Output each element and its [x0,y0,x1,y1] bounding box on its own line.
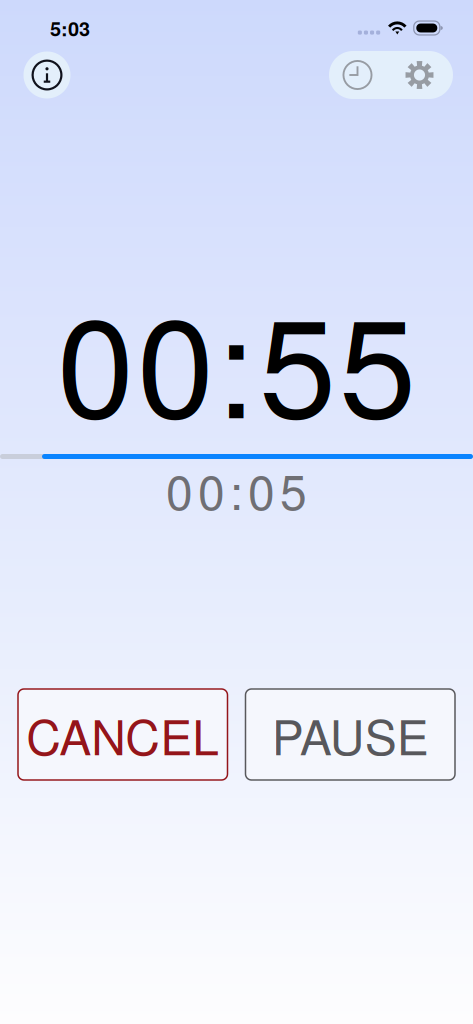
staticText: CANCEL [26,700,219,769]
button[interactable]: PAUSE [245,689,455,780]
button[interactable]: Settings [386,51,453,99]
button[interactable]: CANCEL [18,689,227,780]
staticText: 00:55 [57,259,416,458]
button[interactable]: Info [23,51,70,98]
button[interactable]: History [329,51,386,99]
staticText: 00:05 [166,455,307,524]
staticText: 5:03 [50,14,90,42]
staticText: PAUSE [272,700,429,769]
